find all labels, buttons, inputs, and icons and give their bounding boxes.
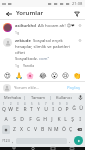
staticText: C bbox=[27, 126, 31, 133]
button[interactable]: 👏 bbox=[73, 71, 82, 80]
staticText: D bbox=[20, 116, 24, 123]
button[interactable]: J bbox=[48, 113, 55, 124]
staticText: V bbox=[34, 126, 38, 133]
button[interactable]: Send bbox=[72, 135, 84, 146]
button[interactable]: Back bbox=[4, 9, 13, 18]
staticText: N bbox=[48, 126, 52, 133]
button[interactable]: Shift bbox=[2, 125, 10, 134]
button[interactable]: Paylaş bbox=[66, 85, 82, 91]
button[interactable]: Share bbox=[72, 9, 81, 18]
button[interactable]: M bbox=[53, 124, 60, 135]
button[interactable]: Ğ bbox=[70, 102, 77, 113]
button[interactable]: A bbox=[2, 113, 10, 124]
button[interactable]: Hide keyboard bbox=[66, 147, 77, 150]
staticText: I bbox=[52, 106, 54, 113]
button[interactable]: Back bbox=[8, 147, 19, 150]
staticText: 1g bbox=[15, 30, 20, 35]
button[interactable]: 🙏 bbox=[15, 71, 24, 80]
staticText: W bbox=[8, 106, 13, 113]
button[interactable]: D bbox=[18, 113, 26, 124]
button[interactable]: X bbox=[18, 124, 25, 135]
button[interactable]: F bbox=[26, 113, 34, 124]
staticText: 5 bbox=[31, 102, 33, 106]
button[interactable]: Backspace bbox=[74, 124, 84, 135]
staticText: Ş bbox=[71, 116, 74, 123]
button[interactable]: 5 bbox=[28, 102, 35, 113]
button[interactable]: Comma bbox=[11, 135, 15, 146]
button[interactable]: Recent apps bbox=[47, 147, 58, 150]
button[interactable]: Ö bbox=[60, 124, 67, 135]
button[interactable]: asilturkhd bbox=[3, 23, 82, 35]
staticText: 0 bbox=[66, 102, 68, 106]
button[interactable]: Period bbox=[68, 135, 72, 146]
button[interactable]: 😍 bbox=[3, 71, 12, 80]
button[interactable]: 6 bbox=[35, 102, 42, 113]
button[interactable]: 2 bbox=[7, 102, 14, 113]
staticText: F bbox=[29, 116, 32, 123]
button[interactable]: 7 bbox=[42, 102, 49, 113]
staticText: 😂 bbox=[39, 72, 47, 80]
button[interactable]: 0 bbox=[63, 102, 70, 113]
button[interactable]: 3 bbox=[14, 102, 21, 113]
button[interactable]: S bbox=[10, 113, 18, 124]
staticText: Kullanıcı bbox=[56, 95, 72, 100]
button[interactable]: Home bbox=[27, 147, 38, 150]
button[interactable]: H bbox=[41, 113, 48, 124]
button[interactable]: Voice input bbox=[76, 93, 85, 102]
staticText: E bbox=[16, 106, 19, 113]
button[interactable]: 😂 bbox=[38, 71, 47, 80]
staticText: 1 bbox=[3, 102, 5, 106]
staticText: Sosyalsol erçek bbox=[33, 38, 63, 44]
staticText: K bbox=[57, 116, 61, 123]
button[interactable]: zekiude bbox=[3, 38, 82, 68]
button[interactable]: Tamam bbox=[25, 93, 50, 102]
staticText: zekiude bbox=[15, 38, 31, 44]
button[interactable]: Merhaba bbox=[0, 93, 24, 102]
staticText: 👏 bbox=[73, 72, 82, 80]
staticText: Ğ bbox=[72, 105, 76, 112]
staticText: Yanıtla bbox=[23, 63, 35, 68]
button[interactable]: 😢 bbox=[61, 71, 70, 80]
staticText: S bbox=[13, 116, 16, 123]
staticText: , bbox=[12, 138, 14, 144]
button[interactable]: Z bbox=[11, 124, 18, 135]
staticText: 3 bbox=[17, 102, 19, 106]
staticText: Yorum ekle... bbox=[14, 85, 40, 91]
button[interactable]: Yorum ekle... bbox=[14, 85, 66, 91]
staticText: Merhaba bbox=[4, 95, 21, 100]
staticText: 21:08 bbox=[72, 1, 83, 6]
staticText: Z bbox=[13, 126, 16, 133]
staticText: M bbox=[54, 126, 59, 133]
staticText: 😍 bbox=[4, 72, 11, 80]
button[interactable]: Ü bbox=[77, 102, 84, 113]
staticText: 2 bbox=[10, 102, 12, 106]
button[interactable]: 4 bbox=[21, 102, 28, 113]
staticText: Yorumlar bbox=[16, 9, 44, 17]
button[interactable]: N bbox=[46, 124, 53, 135]
staticText: P bbox=[65, 106, 69, 113]
button[interactable]: 🌸 bbox=[26, 71, 35, 80]
button[interactable]: V bbox=[32, 124, 39, 135]
button[interactable]: Kullanıcı bbox=[51, 93, 76, 102]
button[interactable]: 8 bbox=[49, 102, 56, 113]
button[interactable]: K bbox=[55, 113, 62, 124]
staticText: Q bbox=[2, 106, 6, 113]
staticText: G bbox=[36, 116, 40, 123]
staticText: J bbox=[51, 116, 53, 123]
staticText: asilturkhd bbox=[15, 23, 36, 29]
button[interactable]: B bbox=[39, 124, 46, 135]
button[interactable]: 9 bbox=[56, 102, 63, 113]
button[interactable]: ?123 bbox=[1, 135, 11, 146]
button[interactable]: 😮 bbox=[50, 71, 59, 80]
button[interactable]: Ç bbox=[67, 124, 74, 135]
button[interactable]: L bbox=[62, 113, 69, 124]
staticText: 🌸 bbox=[26, 72, 35, 80]
button[interactable]: Ş bbox=[69, 113, 76, 124]
button[interactable]: 1 bbox=[1, 102, 7, 113]
button[interactable]: I bbox=[76, 113, 83, 124]
staticText: 9 bbox=[59, 102, 61, 106]
button[interactable]: G bbox=[34, 113, 41, 124]
button[interactable]: C bbox=[25, 124, 32, 135]
staticText: 😮 bbox=[51, 72, 58, 80]
